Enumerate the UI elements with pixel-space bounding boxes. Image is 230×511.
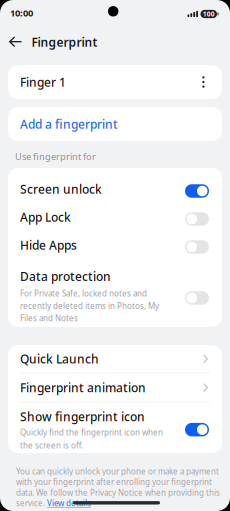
staticText: Hide Apps xyxy=(20,237,77,253)
staticText: You can quickly unlock your phone or mak… xyxy=(16,466,219,477)
staticText: data. We follow the Privacy Notice when … xyxy=(16,487,220,498)
staticText: Screen unlock xyxy=(20,181,102,197)
staticText: For Private Safe, locked notes and xyxy=(20,288,147,299)
staticText: service. xyxy=(16,498,47,508)
staticText: Use fingerprint for xyxy=(15,150,96,162)
staticText: App Lock xyxy=(20,209,71,225)
staticText: Show fingerprint icon xyxy=(20,409,145,424)
staticText: Quick Launch xyxy=(20,351,99,367)
staticText: the screen is off. xyxy=(20,440,83,451)
staticText: 10:00 xyxy=(10,7,33,19)
staticText: Quickly find the fingerprint icon when xyxy=(20,427,163,438)
staticText: Add a fingerprint xyxy=(20,116,118,132)
staticText: Fingerprint xyxy=(31,34,97,50)
button[interactable]: Hide Apps xyxy=(8,231,222,259)
staticText: Data protection xyxy=(20,268,111,284)
button[interactable]: Show fingerprint icon xyxy=(8,403,222,460)
staticText: recently deleted items in Photos, My xyxy=(20,300,159,311)
button[interactable]: App Lock xyxy=(8,203,222,231)
button[interactable]: View details xyxy=(47,498,91,508)
staticText: View details xyxy=(47,498,91,508)
button[interactable] xyxy=(5,32,25,52)
staticText: Files and Notes xyxy=(20,313,78,323)
staticText: 100 xyxy=(203,10,215,18)
button[interactable]: Screen unlock xyxy=(8,175,222,203)
staticText: Finger 1 xyxy=(20,74,66,90)
button[interactable]: Finger 1 xyxy=(8,65,222,99)
button[interactable]: Fingerprint animation xyxy=(8,373,222,402)
staticText: Fingerprint animation xyxy=(20,380,146,395)
button[interactable]: Add a fingerprint xyxy=(8,107,222,141)
button[interactable]: Quick Launch xyxy=(8,345,222,372)
button[interactable]: Data protection xyxy=(8,259,222,328)
staticText: with your fingerprint after enrolling yo… xyxy=(16,477,212,487)
